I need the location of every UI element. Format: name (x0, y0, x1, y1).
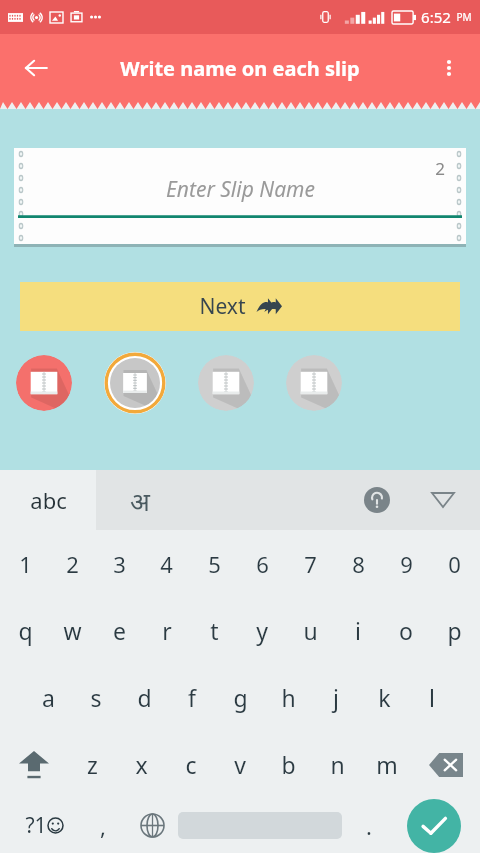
button[interactable]: Slip (286, 355, 342, 411)
staticText: 9 (400, 549, 413, 579)
button[interactable]: y (238, 597, 286, 664)
staticText: a (42, 682, 55, 713)
button[interactable]: l (408, 664, 456, 731)
button[interactable]: 6 (238, 530, 286, 597)
button[interactable]: u (286, 597, 334, 664)
button[interactable]: Backspace (411, 731, 480, 798)
staticText: 0 (448, 549, 461, 579)
button[interactable]: abc (0, 470, 96, 530)
staticText: PM (456, 10, 472, 24)
button[interactable]: 5 (190, 530, 238, 597)
button[interactable]: z (68, 731, 117, 798)
button[interactable]: n (313, 731, 362, 798)
staticText: 1 (19, 549, 32, 579)
button[interactable]: Slip (198, 355, 254, 411)
staticText: x (135, 749, 148, 780)
button[interactable]: अ (96, 470, 480, 530)
staticText: Enter Slip Name (166, 175, 315, 204)
staticText: d (137, 682, 152, 713)
button[interactable]: 2 (14, 148, 466, 244)
button[interactable]: r (143, 597, 190, 664)
button[interactable]: 7 (286, 530, 334, 597)
staticText: 8 (352, 549, 365, 579)
staticText: t (210, 615, 219, 646)
button[interactable]: s (72, 664, 120, 731)
button[interactable]: p (430, 597, 478, 664)
staticText: k (378, 682, 391, 713)
button[interactable]: i (334, 597, 382, 664)
button[interactable]: More options (428, 47, 470, 89)
button[interactable]: ?1 (8, 798, 80, 853)
staticText: 7 (304, 549, 317, 579)
staticText: w (63, 615, 82, 646)
button[interactable]: h (264, 664, 312, 731)
button[interactable]: Slip (16, 355, 72, 411)
button[interactable]: m (362, 731, 411, 798)
button[interactable]: o (382, 597, 430, 664)
staticText: q (18, 615, 33, 646)
button[interactable]: v (215, 731, 264, 798)
button[interactable]: 1 (2, 530, 49, 597)
button[interactable]: q (2, 597, 49, 664)
button[interactable]: Shift (0, 731, 68, 798)
button[interactable]: Enter (396, 798, 472, 853)
button[interactable]: Change language (126, 798, 178, 853)
staticText: अ (130, 483, 150, 518)
button[interactable]: d (120, 664, 168, 731)
button[interactable]: Slip (104, 352, 166, 414)
staticText: l (429, 682, 435, 713)
staticText: abc (30, 485, 67, 515)
staticText: u (303, 615, 318, 646)
staticText: y (256, 615, 268, 646)
button[interactable]: f (168, 664, 216, 731)
staticText: z (87, 749, 98, 780)
staticText: f (188, 682, 196, 713)
staticText: e (113, 615, 126, 646)
staticText: 2 (435, 157, 445, 180)
staticText: . (366, 811, 372, 841)
staticText: , (100, 811, 106, 841)
button[interactable]: 8 (334, 530, 382, 597)
staticText: c (185, 749, 197, 780)
button[interactable]: x (117, 731, 166, 798)
staticText: b (281, 749, 296, 780)
staticText: v (234, 749, 246, 780)
staticText: Write name on each slip (120, 55, 360, 82)
staticText: 5 (208, 549, 221, 579)
staticText: ?1 (25, 811, 47, 840)
button[interactable]: Help (360, 483, 394, 517)
staticText: h (281, 682, 296, 713)
button[interactable]: 3 (96, 530, 143, 597)
button[interactable]: 9 (382, 530, 430, 597)
button[interactable]: e (96, 597, 143, 664)
button[interactable]: 4 (143, 530, 190, 597)
staticText: s (90, 682, 102, 713)
staticText: 6:52 (421, 7, 451, 27)
staticText: m (376, 749, 398, 780)
button[interactable]: k (360, 664, 408, 731)
button[interactable]: Next (20, 282, 460, 331)
button[interactable]: 2 (49, 530, 96, 597)
staticText: i (355, 615, 361, 646)
staticText: p (447, 615, 462, 646)
staticText: 3 (113, 549, 126, 579)
button[interactable]: g (216, 664, 264, 731)
staticText: Next (199, 292, 246, 321)
button[interactable]: . (342, 798, 396, 853)
staticText: n (330, 749, 345, 780)
button[interactable]: Hide keyboard (426, 483, 460, 517)
staticText: g (233, 682, 248, 713)
staticText: j (333, 682, 339, 713)
staticText: 2 (66, 549, 79, 579)
button[interactable]: t (190, 597, 238, 664)
button[interactable]: c (166, 731, 215, 798)
button[interactable]: a (24, 664, 72, 731)
button[interactable]: j (312, 664, 360, 731)
button[interactable]: 0 (430, 530, 478, 597)
button[interactable]: , (80, 798, 126, 853)
button[interactable]: w (49, 597, 96, 664)
button[interactable]: b (264, 731, 313, 798)
staticText: r (162, 615, 172, 646)
button[interactable]: Back (14, 46, 58, 90)
